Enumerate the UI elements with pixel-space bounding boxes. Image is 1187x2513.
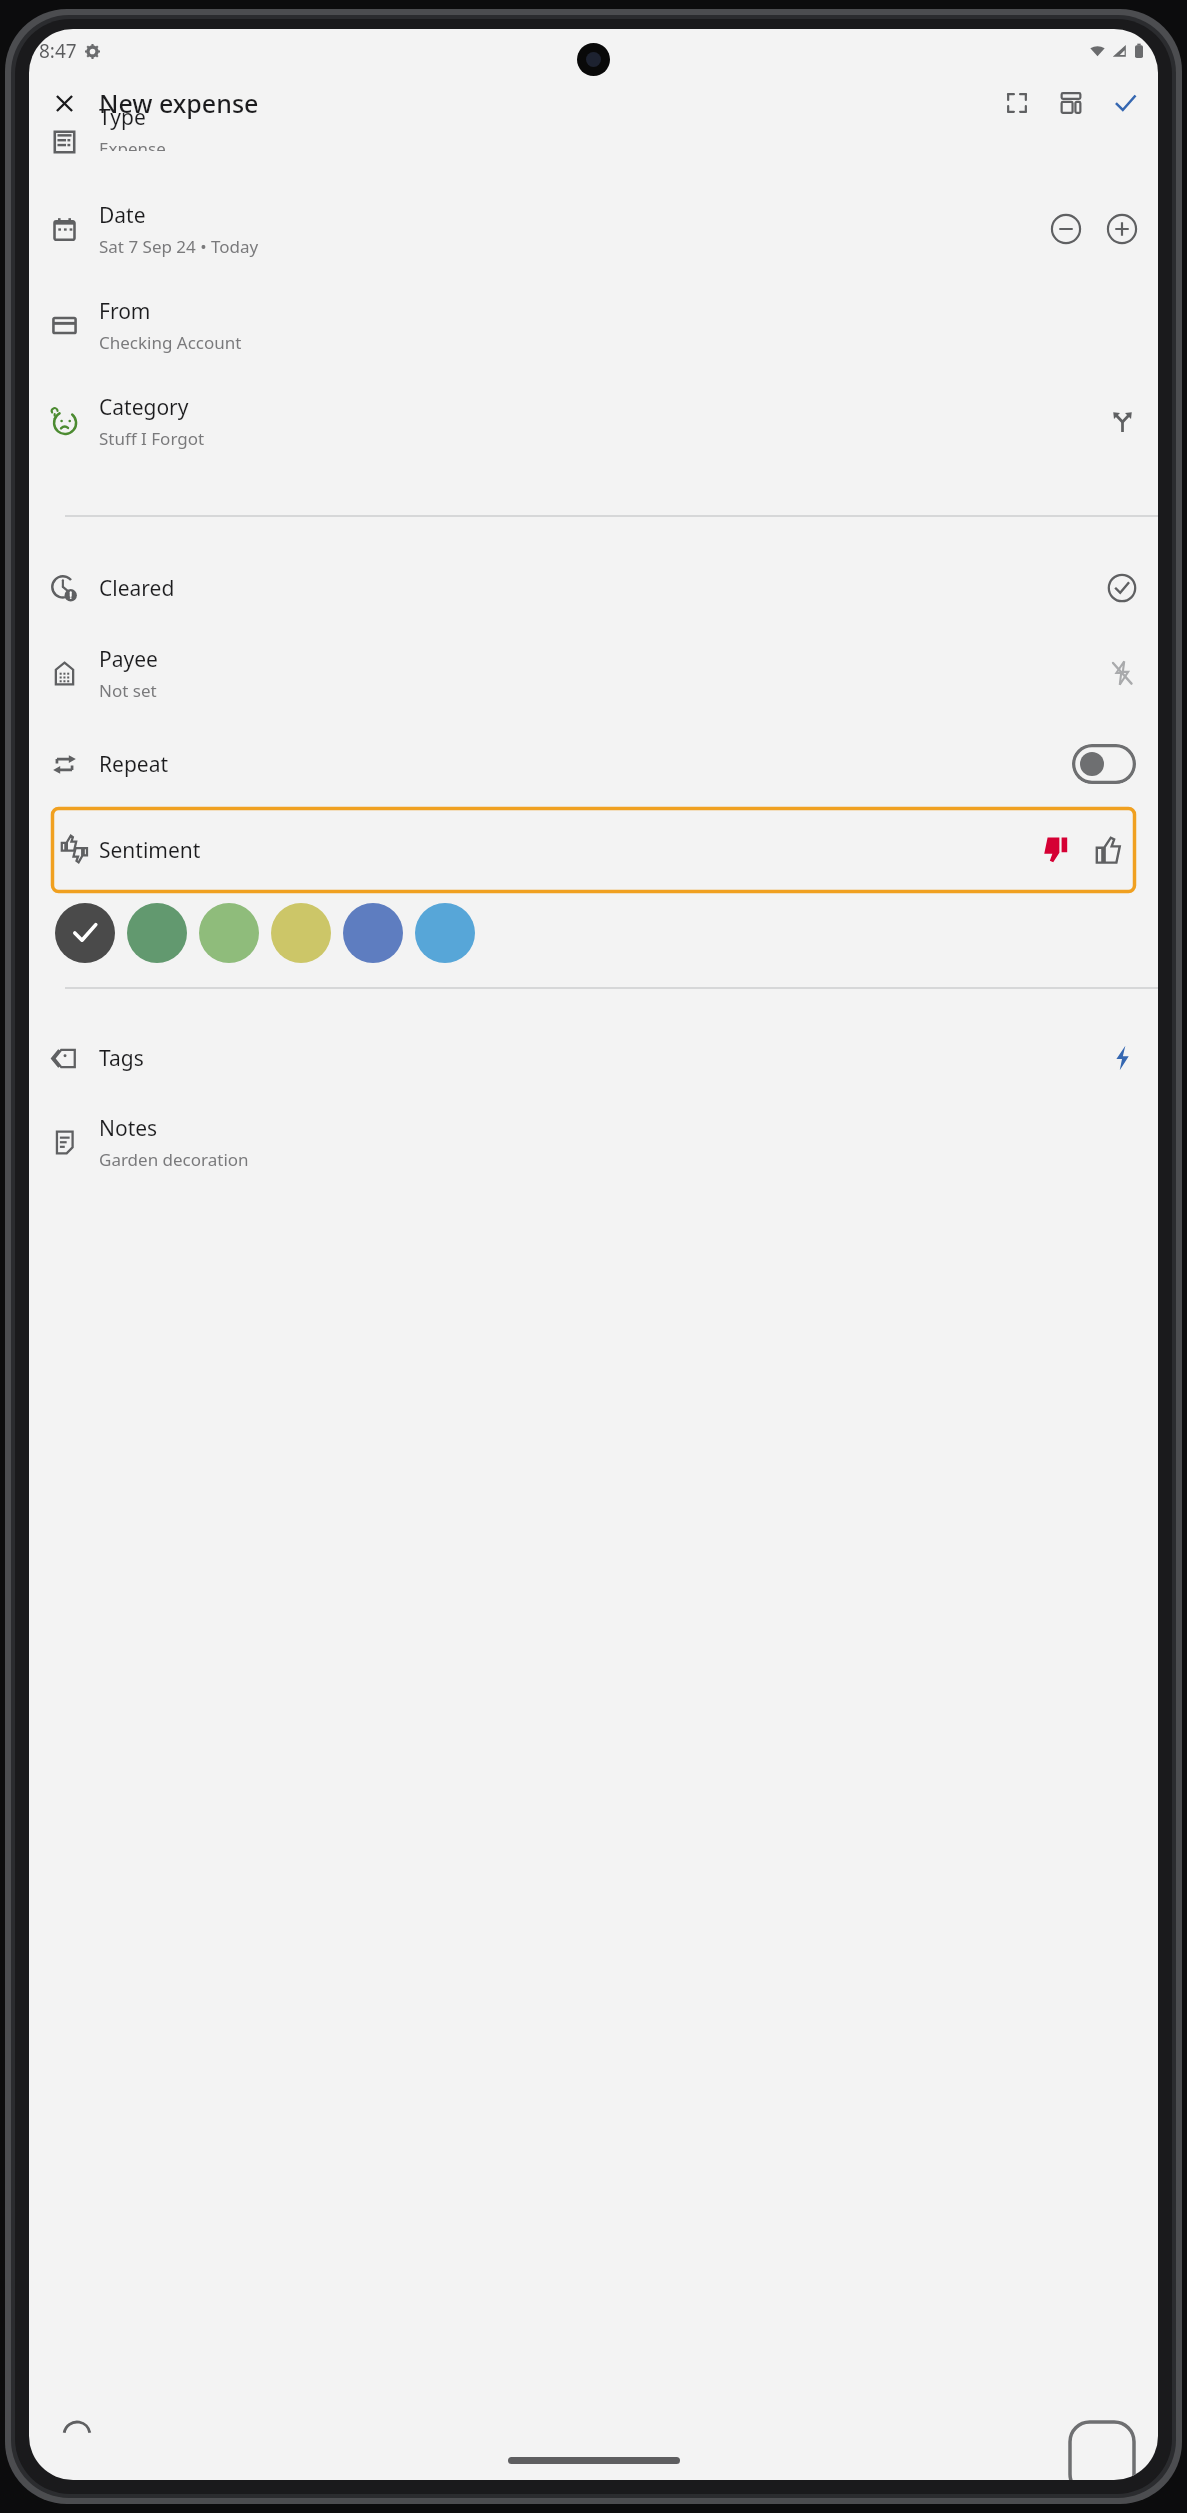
staticText: Checking Account: [99, 331, 242, 354]
button[interactable]: Colour 3: [271, 903, 331, 963]
staticText: Notes: [99, 1114, 158, 1143]
staticText: Stuff I Forgot: [99, 427, 205, 450]
button[interactable]: Colour 4: [343, 903, 403, 963]
other: Next day: [1106, 213, 1138, 245]
button[interactable]: Cleared: [1100, 566, 1144, 610]
button[interactable]: Like: [1082, 824, 1134, 876]
button[interactable]: Split: [1100, 399, 1144, 443]
other: Previous day: [1050, 213, 1082, 245]
button[interactable]: Previous day: [1044, 207, 1088, 251]
button[interactable]: Repeat toggle: [1072, 744, 1136, 784]
button[interactable]: Save: [1098, 76, 1152, 130]
staticText: Not set: [99, 679, 157, 702]
button[interactable]: Next day: [1100, 207, 1144, 251]
staticText: Sat 7 Sep 24 • Today: [99, 235, 259, 258]
staticText: From: [99, 297, 151, 326]
button[interactable]: Default colour, selected: [55, 903, 115, 963]
button[interactable]: Colour 5: [415, 903, 475, 963]
button[interactable]: Sentiment: [51, 807, 1136, 893]
staticText: Garden decoration: [99, 1148, 249, 1171]
button[interactable]: Quick tag: [1100, 1036, 1144, 1080]
staticText: Repeat: [99, 750, 1072, 779]
button[interactable]: Date: [29, 181, 1158, 277]
staticText: 8:47: [39, 38, 77, 64]
staticText: Cleared: [99, 574, 175, 603]
button[interactable]: Close: [29, 73, 99, 133]
staticText: Type: [99, 103, 146, 132]
button[interactable]: Layout: [1044, 76, 1098, 130]
staticText: Category: [99, 393, 189, 422]
button[interactable]: Auto-fill off: [1100, 651, 1144, 695]
button[interactable]: Colour 2: [199, 903, 259, 963]
button[interactable]: From: [29, 277, 1158, 373]
button[interactable]: Dislike: [1030, 824, 1082, 876]
button[interactable]: Type: [29, 103, 1158, 151]
staticText: Date: [99, 201, 146, 230]
staticText: Tags: [99, 1044, 144, 1073]
staticText: Sentiment: [99, 836, 1030, 865]
staticText: Payee: [99, 645, 158, 674]
staticText: Expense: [99, 137, 166, 151]
button[interactable]: Cleared: [29, 551, 1158, 625]
button[interactable]: Fullscreen: [990, 76, 1044, 130]
button[interactable]: Payee: [29, 625, 1158, 721]
staticText: New expense: [99, 86, 259, 120]
button[interactable]: Repeat: [29, 721, 1158, 807]
button[interactable]: Tags: [29, 1021, 1158, 1095]
button[interactable]: Notes: [29, 1095, 1158, 1189]
button[interactable]: Category: [29, 373, 1158, 469]
button[interactable]: Colour 1: [127, 903, 187, 963]
